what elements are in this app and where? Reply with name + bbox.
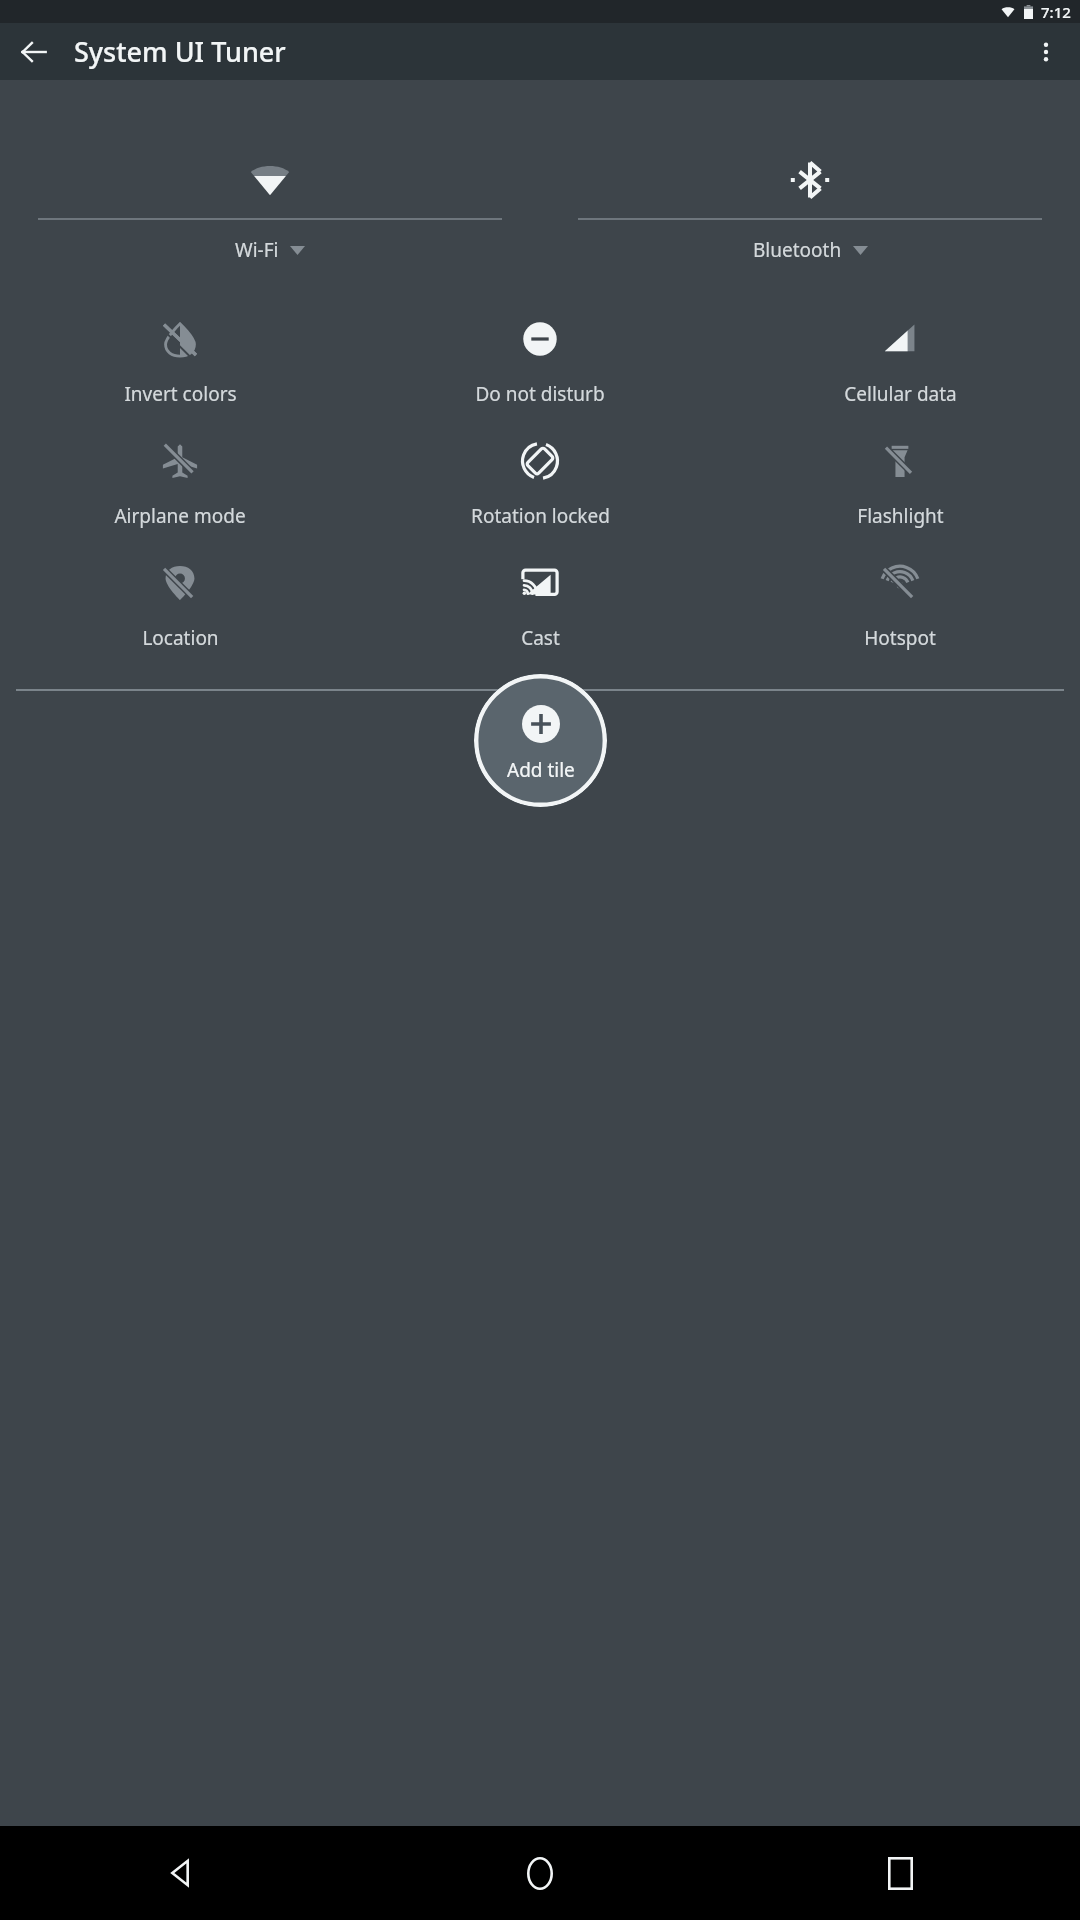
button[interactable]: Invert colors <box>0 315 360 407</box>
staticText: 7:12 <box>1041 2 1071 22</box>
staticText: Cellular data <box>844 381 957 407</box>
staticText: System UI Tuner <box>74 33 286 70</box>
button[interactable]: Bluetooth <box>540 154 1080 263</box>
button[interactable]: Do not disturb <box>360 315 720 407</box>
button[interactable]: Hotspot <box>720 559 1080 651</box>
button[interactable]: Back <box>10 28 58 76</box>
staticText: Do not disturb <box>475 381 605 407</box>
staticText: Location <box>142 625 219 651</box>
staticText: Bluetooth <box>753 237 842 263</box>
staticText: Wi-Fi <box>235 237 279 263</box>
button[interactable]: Location <box>0 559 360 651</box>
button[interactable]: More options <box>1022 28 1070 76</box>
button[interactable]: Add tile <box>474 674 607 807</box>
button[interactable]: Cellular data <box>720 315 1080 407</box>
staticText: Airplane mode <box>114 503 246 529</box>
staticText: Hotspot <box>864 625 936 651</box>
button[interactable]: Home <box>360 1826 720 1920</box>
button[interactable]: Airplane mode <box>0 437 360 529</box>
staticText: Cast <box>521 625 560 651</box>
button[interactable]: Back <box>0 1826 360 1920</box>
staticText: Flashlight <box>857 503 944 529</box>
button[interactable]: Flashlight <box>720 437 1080 529</box>
button[interactable]: Wi-Fi <box>0 154 540 263</box>
staticText: Add tile <box>507 757 575 783</box>
staticText: Invert colors <box>124 381 237 407</box>
button[interactable]: Rotation locked <box>360 437 720 529</box>
staticText: Rotation locked <box>471 503 610 529</box>
button[interactable]: Cast <box>360 559 720 651</box>
button[interactable]: Recent apps <box>720 1826 1080 1920</box>
